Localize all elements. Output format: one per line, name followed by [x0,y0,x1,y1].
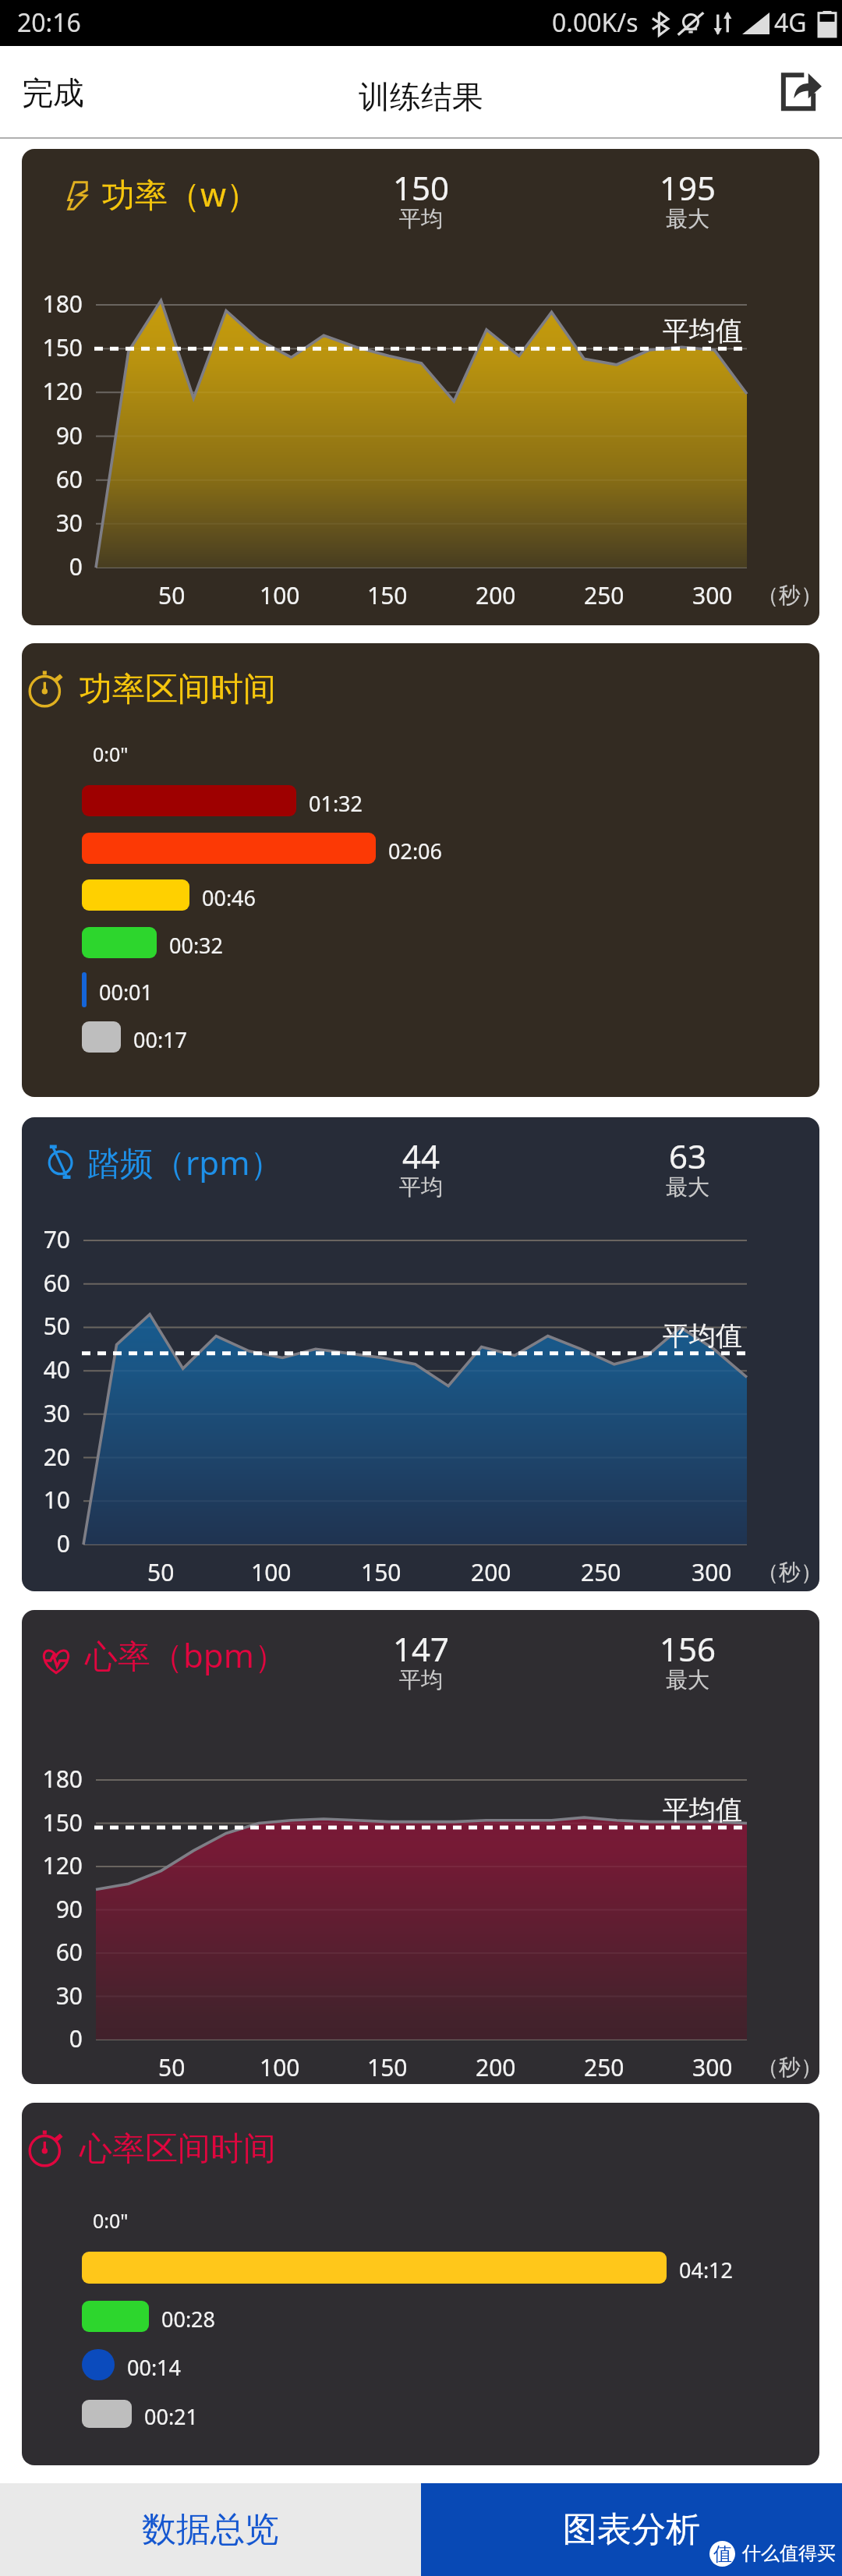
staticText: 195 [660,165,716,210]
staticText: 数据总览 [142,2508,279,2551]
button[interactable]: 心率区间时间 [22,2103,819,2465]
staticText: 150 [361,1556,402,1588]
staticText: 150 [42,331,83,363]
staticText: 50 [158,2051,186,2083]
staticText: 150 [393,165,450,210]
staticText: 训练结果 [359,77,483,116]
staticText: 180 [42,288,83,320]
staticText: 0.00K/s [552,5,639,40]
button[interactable]: Share [759,59,842,123]
button[interactable]: 功率（w） [22,149,819,625]
staticText: 70 [43,1223,70,1255]
staticText: 60 [55,463,83,495]
staticText: 200 [476,579,516,611]
staticText: 00:32 [169,931,224,960]
staticText: 200 [476,2051,516,2083]
staticText: 180 [42,1763,83,1795]
button[interactable]: 图表分析 [421,2483,842,2576]
staticText: 300 [692,579,733,611]
staticText: 00:01 [99,978,154,1007]
staticText: 10 [43,1484,70,1516]
staticText: 300 [692,1556,732,1588]
staticText: 踏频（rpm） [87,1140,283,1184]
staticText: 最大 [666,1666,709,1693]
staticText: 什么值得买 [742,2542,836,2565]
button[interactable]: 数据总览 [0,2483,421,2576]
staticText: 最大 [666,1173,709,1201]
staticText: 0 [69,550,83,582]
staticText: 147 [393,1626,450,1671]
staticText: 60 [55,1936,83,1968]
staticText: 00:46 [202,883,256,912]
staticText: 04:12 [679,2256,734,2284]
staticText: 值 [713,2542,732,2566]
staticText: 心率区间时间 [80,2128,276,2170]
staticText: （秒） [757,2054,819,2081]
staticText: 平均值 [663,1319,742,1353]
staticText: 30 [43,1397,70,1429]
staticText: 平均值 [663,1793,742,1827]
staticText: 90 [55,419,83,451]
staticText: 100 [260,579,300,611]
staticText: 156 [660,1626,716,1671]
staticText: 完成 [22,73,84,112]
staticText: 功率（w） [102,172,260,216]
staticText: 150 [367,579,408,611]
staticText: 4G [774,5,807,40]
staticText: 90 [55,1893,83,1925]
staticText: 50 [158,579,186,611]
staticText: 最大 [666,205,709,232]
staticText: 40 [43,1353,70,1385]
staticText: 平均值 [663,314,742,348]
staticText: 50 [43,1310,70,1342]
button[interactable]: 功率区间时间 [22,643,819,1097]
staticText: 250 [584,2051,624,2083]
staticText: 120 [42,1849,83,1881]
staticText: 250 [581,1556,621,1588]
staticText: 63 [669,1134,707,1178]
staticText: 150 [42,1806,83,1838]
staticText: 120 [42,375,83,407]
staticText: 00:21 [144,2402,199,2431]
staticText: 平均 [399,1173,443,1201]
staticText: 30 [55,507,83,539]
staticText: 00:14 [127,2353,182,2382]
staticText: （秒） [757,1559,819,1586]
staticText: 100 [251,1556,292,1588]
button[interactable]: 心率（bpm） [22,1610,819,2084]
staticText: 20 [43,1441,70,1473]
staticText: 150 [367,2051,408,2083]
staticText: （秒） [757,582,819,609]
staticText: 100 [260,2051,300,2083]
staticText: 300 [692,2051,733,2083]
button[interactable]: 踏频（rpm） [22,1117,819,1591]
staticText: 250 [584,579,624,611]
staticText: 心率（bpm） [85,1633,287,1677]
staticText: 0:0" [93,741,129,767]
staticText: 00:28 [161,2305,216,2334]
staticText: 02:06 [388,837,443,865]
staticText: 功率区间时间 [80,669,276,710]
staticText: 平均 [399,205,443,232]
staticText: 00:17 [133,1025,188,1054]
staticText: 60 [43,1267,70,1299]
staticText: 图表分析 [563,2508,700,2551]
staticText: 0:0" [93,2207,129,2234]
staticText: 0 [69,2022,83,2054]
staticText: 200 [471,1556,511,1588]
staticText: 平均 [399,1666,443,1693]
staticText: 01:32 [309,789,363,818]
staticText: 20:16 [17,5,81,40]
staticText: 44 [402,1134,440,1178]
staticText: 50 [147,1556,175,1588]
staticText: 0 [56,1527,70,1559]
button[interactable]: 完成 [3,59,103,126]
staticText: 30 [55,1980,83,2012]
